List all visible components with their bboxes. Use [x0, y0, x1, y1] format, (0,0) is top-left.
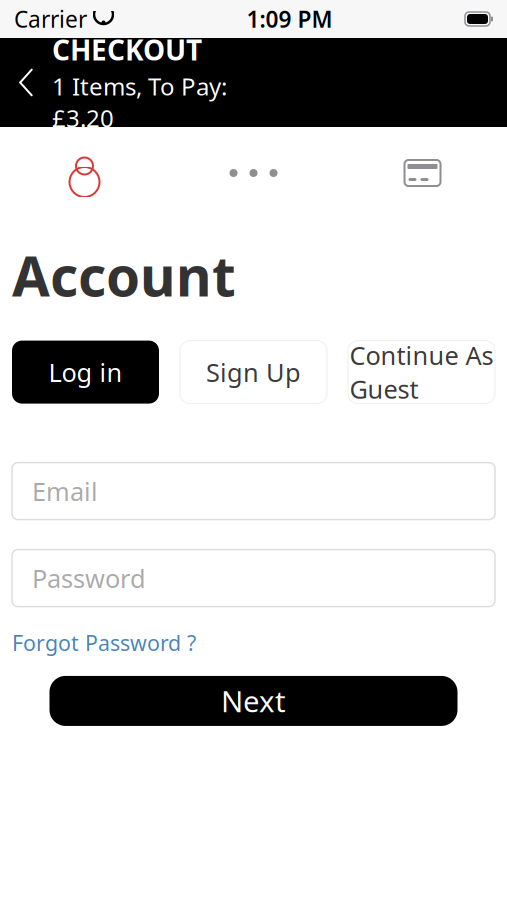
staticText: Email: [32, 474, 98, 508]
staticText: Next: [221, 681, 286, 720]
button[interactable]: Forgot Password ?: [12, 629, 196, 657]
staticText: 1:09 PM: [246, 4, 332, 34]
staticText: Password: [32, 561, 146, 595]
staticText: Account: [12, 239, 236, 312]
button[interactable]: Next: [49, 676, 457, 726]
staticText: Forgot Password ?: [12, 629, 196, 657]
button[interactable]: Log in: [12, 341, 159, 404]
button[interactable]: Continue As Guest: [348, 341, 495, 404]
button[interactable]: Back: [0, 47, 52, 117]
staticText: Continue As Guest: [349, 338, 493, 406]
button[interactable]: Email: [12, 463, 495, 520]
staticText: CHECKOUT: [52, 31, 202, 68]
button[interactable]: Password: [12, 550, 495, 607]
staticText: Sign Up: [206, 355, 301, 389]
button[interactable]: Sign Up: [180, 341, 327, 404]
staticText: Log in: [48, 355, 122, 389]
staticText: 1 Items, To Pay: £3.20: [52, 70, 227, 134]
staticText: Carrier: [14, 4, 87, 34]
